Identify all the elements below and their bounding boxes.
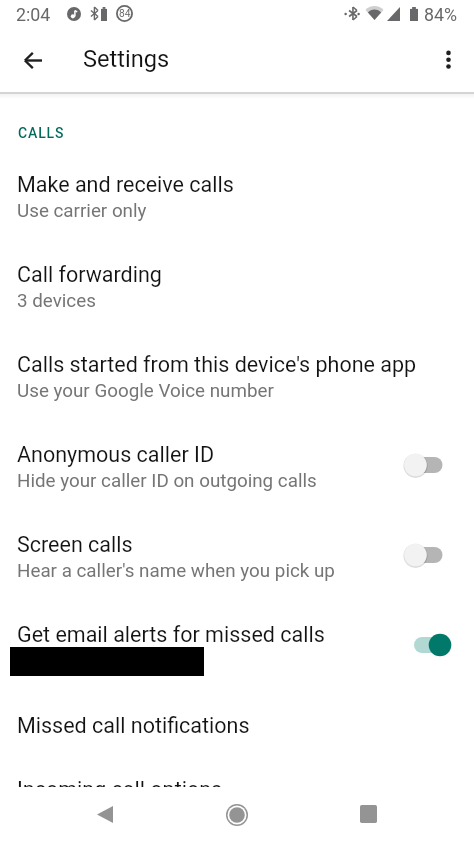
staticText: 84% — [424, 4, 458, 25]
button[interactable]: Make and receive calls — [0, 160, 474, 250]
staticText: 3 devices — [17, 290, 96, 312]
button[interactable]: Calls started from this device's phone a… — [0, 340, 474, 430]
staticText: 2:04 — [16, 4, 51, 25]
staticText: CALLS — [18, 125, 65, 141]
button[interactable]: Switch off — [403, 452, 453, 478]
staticText: Call forwarding — [17, 262, 162, 287]
button[interactable]: Back — [80, 787, 129, 842]
button[interactable]: More options — [424, 34, 472, 82]
staticText: Missed call notifications — [17, 713, 250, 738]
button[interactable]: Back — [12, 34, 64, 86]
staticText: 84 — [119, 8, 131, 20]
staticText: Hide your caller ID on outgoing calls — [17, 470, 317, 492]
staticText: Calls started from this device's phone a… — [17, 352, 417, 377]
staticText: Settings — [83, 45, 170, 73]
staticText: Incoming call options — [17, 777, 223, 802]
button[interactable]: Recent apps — [344, 787, 394, 842]
button[interactable]: Get email alerts for missed calls — [0, 610, 474, 700]
staticText: Get email alerts for missed calls — [17, 622, 325, 647]
staticText: Hear a caller's name when you pick up — [17, 560, 335, 582]
staticText: Make and receive calls — [17, 172, 234, 197]
button[interactable]: Switch off — [403, 542, 453, 568]
button[interactable]: Call forwarding — [0, 250, 474, 340]
button[interactable]: Home — [212, 787, 262, 842]
staticText: Use your Google Voice number — [17, 380, 274, 402]
button[interactable]: Switch on — [403, 632, 453, 658]
button[interactable]: Incoming call options — [0, 765, 474, 829]
button[interactable]: Anonymous caller ID — [0, 430, 474, 520]
button[interactable]: Screen calls — [0, 520, 474, 610]
button[interactable]: Missed call notifications — [0, 701, 474, 765]
staticText: Screen calls — [17, 532, 133, 557]
staticText: Use carrier only — [17, 200, 147, 222]
staticText: Anonymous caller ID — [17, 442, 214, 467]
